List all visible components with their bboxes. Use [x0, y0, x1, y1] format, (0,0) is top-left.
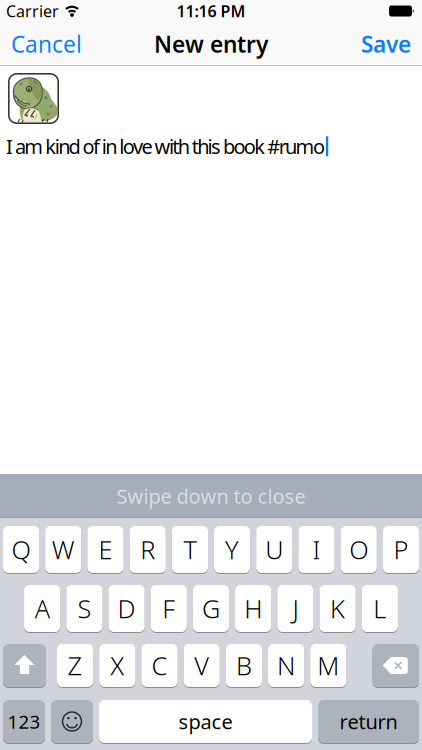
staticText: R	[140, 533, 155, 566]
button[interactable]: M	[310, 644, 346, 687]
button[interactable]: O	[341, 526, 377, 573]
button[interactable]: A	[24, 585, 60, 632]
staticText: H	[244, 592, 262, 625]
button[interactable]: Swipe down to close	[0, 474, 422, 518]
staticText: F	[162, 592, 175, 625]
button[interactable]: W	[45, 526, 81, 573]
button[interactable]: Emoji	[51, 700, 93, 743]
button[interactable]: V	[184, 644, 220, 687]
button[interactable]: T	[172, 526, 208, 573]
button[interactable]: U	[256, 526, 292, 573]
staticText: W	[52, 533, 75, 566]
button[interactable]: Shift	[3, 644, 46, 687]
staticText: T	[183, 533, 196, 566]
button[interactable]: Delete	[372, 644, 419, 687]
staticText: Cancel	[11, 29, 82, 59]
button[interactable]: Cancel	[0, 21, 82, 67]
staticText: Q	[12, 533, 31, 566]
button[interactable]: L	[362, 585, 398, 632]
button[interactable]: C	[141, 644, 178, 687]
button[interactable]: E	[87, 526, 124, 573]
staticText: Y	[225, 533, 239, 566]
staticText: X	[110, 649, 124, 682]
staticText: V	[194, 649, 209, 682]
button[interactable]: space	[99, 700, 312, 743]
staticText: C	[151, 649, 167, 682]
button[interactable]: Save	[361, 21, 422, 67]
staticText: U	[265, 533, 283, 566]
button[interactable]: G	[193, 585, 229, 632]
button[interactable]: K	[319, 585, 356, 632]
staticText: Swipe down to close	[116, 483, 305, 509]
staticText: Carrier	[6, 0, 59, 22]
staticText: D	[118, 592, 136, 625]
staticText: New entry	[154, 29, 268, 59]
button[interactable]: H	[235, 585, 271, 632]
button[interactable]: 123	[3, 700, 45, 743]
staticText: P	[393, 533, 408, 566]
button[interactable]: J	[277, 585, 313, 632]
staticText: L	[373, 592, 386, 625]
button[interactable]: Y	[214, 526, 250, 573]
staticText: A	[35, 592, 50, 625]
staticText: I	[312, 533, 320, 566]
button[interactable]: S	[66, 585, 102, 632]
staticText: B	[236, 649, 252, 682]
button[interactable]: P	[383, 526, 419, 573]
staticText: O	[349, 533, 368, 566]
button[interactable]: B	[226, 644, 262, 687]
staticText: J	[292, 592, 298, 625]
button[interactable]: R	[130, 526, 166, 573]
button[interactable]: Q	[3, 526, 39, 573]
staticText: E	[98, 533, 112, 566]
button[interactable]: D	[108, 585, 145, 632]
staticText: Save	[361, 29, 411, 59]
staticText: space	[178, 708, 232, 735]
staticText: 11:16 PM	[176, 0, 245, 22]
staticText: 123	[7, 709, 40, 734]
staticText: G	[202, 592, 220, 625]
button[interactable]: I	[298, 526, 335, 573]
button[interactable]: F	[151, 585, 187, 632]
button[interactable]: return	[318, 700, 419, 743]
staticText: Z	[68, 649, 83, 682]
staticText: I am kind of in love with this book #rum…	[6, 133, 325, 160]
staticText: S	[77, 592, 91, 625]
staticText: M	[317, 649, 339, 682]
button[interactable]: X	[99, 644, 135, 687]
button[interactable]: Z	[57, 644, 93, 687]
staticText: K	[330, 592, 345, 625]
staticText: return	[339, 708, 397, 735]
button[interactable]: N	[268, 644, 304, 687]
staticText: N	[277, 649, 295, 682]
